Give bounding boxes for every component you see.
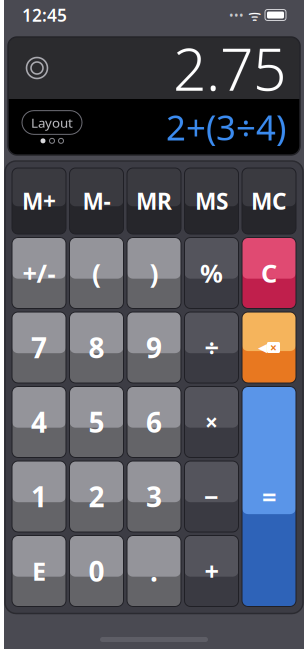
staticText: 2+(3÷4) [166,104,286,150]
button[interactable]: MC [242,168,296,234]
staticText: % [200,256,223,290]
staticText: Layout [31,114,73,131]
staticText: = [262,480,276,513]
button[interactable]: 8 [69,312,123,383]
button[interactable]: 6 [127,386,181,457]
staticText: 0 [88,552,104,590]
staticText: 1 [31,478,47,515]
button[interactable]: ) [127,237,181,308]
staticText: × [205,407,218,437]
staticText: M+ [22,186,56,216]
staticText: E [32,554,46,588]
staticText: M- [82,186,110,216]
staticText: × [270,339,277,355]
staticText: 3 [146,478,162,515]
staticText: ÷ [204,331,218,364]
staticText: MC [251,186,287,216]
staticText: − [204,480,219,513]
button[interactable]: MS [184,168,238,234]
staticText: ◀ [258,341,267,354]
button[interactable]: % [184,237,238,308]
button[interactable]: × [184,386,238,457]
button[interactable]: ( [69,237,123,308]
button[interactable]: Layout [22,111,82,134]
staticText: MS [195,186,228,216]
staticText: +/- [22,256,55,290]
staticText: ᯤ [244,5,261,25]
button[interactable]: + [184,535,238,606]
staticText: C [261,256,277,290]
button[interactable]: E [12,535,66,606]
button[interactable]: 9 [127,312,181,383]
button[interactable]: 5 [69,386,123,457]
staticText: 5 [88,403,104,441]
staticText: + [204,554,218,588]
button[interactable]: ÷ [184,312,238,383]
button[interactable]: +/- [12,237,66,308]
button[interactable]: Delete [242,312,296,383]
button[interactable]: M- [69,168,123,234]
button[interactable]: − [184,461,238,532]
button[interactable]: . [127,535,181,606]
staticText: . [150,552,158,590]
staticText: ••• [229,7,244,23]
staticText: ) [149,255,158,291]
button[interactable]: MR [127,168,181,234]
staticText: 6 [146,403,162,441]
staticText: 7 [31,329,47,366]
button[interactable]: 1 [12,461,66,532]
button[interactable]: 7 [12,312,66,383]
staticText: 8 [88,329,104,366]
staticText: MR [136,186,172,216]
staticText: 9 [146,329,162,366]
staticText: 2.75 [173,29,286,107]
button[interactable]: 2 [69,461,123,532]
button[interactable]: 4 [12,386,66,457]
button[interactable]: 3 [127,461,181,532]
button[interactable]: M+ [12,168,66,234]
button[interactable]: 0 [69,535,123,606]
staticText: 4 [31,403,47,441]
staticText: 12:45 [22,3,67,26]
button[interactable]: C [242,237,296,308]
button[interactable]: = [242,386,296,606]
staticText: 2 [88,478,104,515]
button[interactable]: Settings [22,53,52,83]
staticText: ( [92,255,101,291]
